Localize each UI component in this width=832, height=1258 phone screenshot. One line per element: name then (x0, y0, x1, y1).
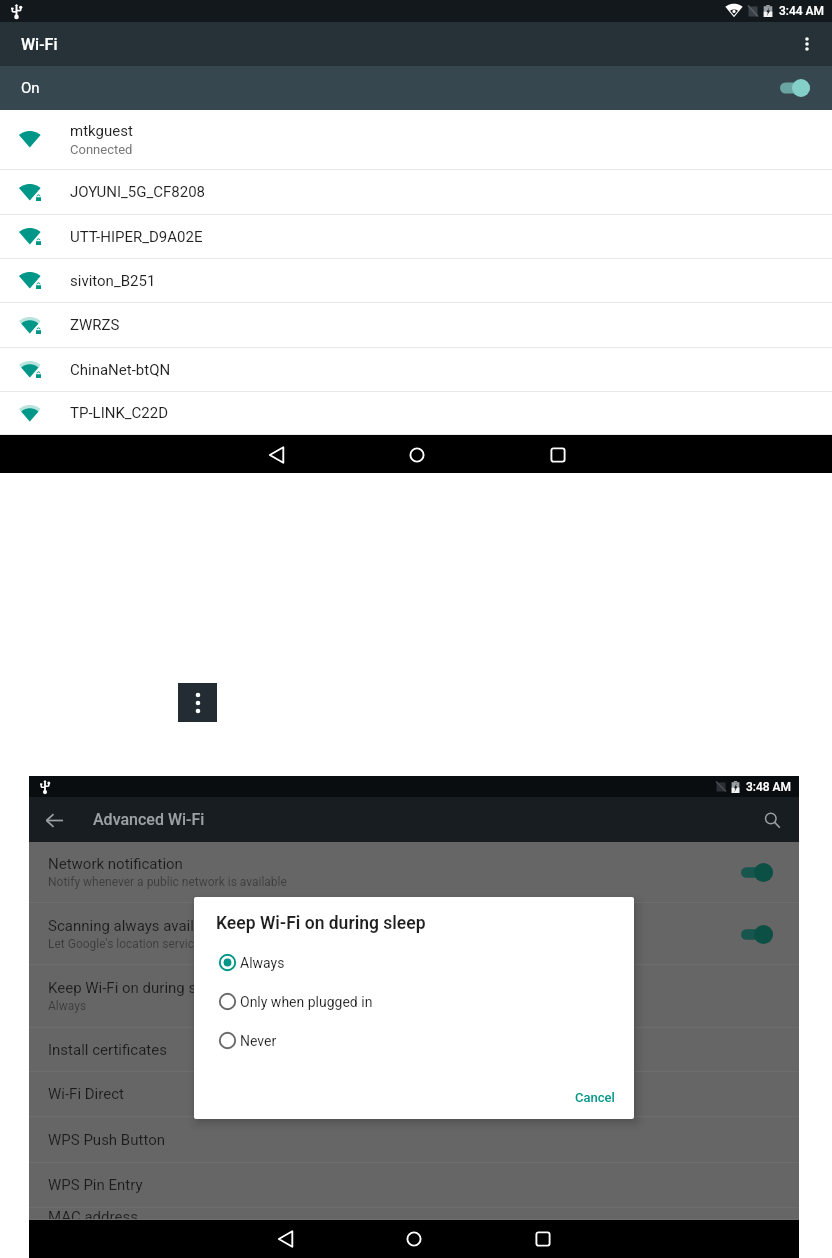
staticText: siviton_B251 (70, 272, 156, 290)
button[interactable]: MAC address (29, 1208, 799, 1220)
staticText: Let Google's location service and other … (48, 937, 312, 951)
button[interactable]: Only when plugged in (194, 982, 634, 1021)
button[interactable]: Back (255, 1220, 315, 1258)
button[interactable]: JOYUNI_5G_CF8208 (0, 170, 832, 215)
staticText: Connected (70, 142, 133, 157)
staticText: Always (48, 999, 87, 1013)
staticText: Notify whenever a public network is avai… (48, 875, 287, 889)
staticText: JOYUNI_5G_CF8208 (70, 183, 206, 201)
button[interactable]: More options (178, 683, 217, 722)
staticText: Wi-Fi Direct (48, 1085, 124, 1103)
button[interactable]: Keep Wi-Fi on during sleep (29, 965, 799, 1028)
button[interactable]: TP-LINK_C22D (0, 392, 832, 435)
staticText: Advanced Wi-Fi (93, 810, 205, 829)
staticText: WPS Pin Entry (48, 1176, 143, 1194)
button[interactable]: Wi-Fi Direct (29, 1072, 799, 1117)
staticText: TP-LINK_C22D (70, 404, 169, 422)
staticText: Only when plugged in (240, 994, 373, 1010)
button[interactable]: On (0, 66, 832, 110)
button[interactable]: ZWRZS (0, 303, 832, 348)
button[interactable]: Never (194, 1021, 634, 1060)
staticText: 3:44 AM (779, 4, 825, 18)
button[interactable]: Home (387, 436, 447, 474)
button[interactable]: More options (785, 22, 829, 66)
staticText: Scanning always available (48, 917, 223, 935)
staticText: 3:48 AM (746, 780, 792, 794)
button[interactable]: UTT-HIPER_D9A02E (0, 215, 832, 259)
button[interactable]: Search (750, 798, 794, 842)
staticText: MAC address (48, 1208, 138, 1219)
button[interactable]: WPS Push Button (29, 1117, 799, 1163)
button[interactable]: WPS Pin Entry (29, 1163, 799, 1208)
staticText: Wi-Fi (21, 35, 58, 54)
button[interactable]: ChinaNet-btQN (0, 348, 832, 392)
staticText: Never (240, 1033, 277, 1049)
staticText: Always (240, 955, 285, 971)
button[interactable]: Recents (528, 436, 588, 474)
staticText: mtkguest (70, 122, 133, 140)
staticText: Network notification (48, 855, 183, 873)
staticText: UTT-HIPER_D9A02E (70, 228, 203, 246)
staticText: Keep Wi-Fi on during sleep (48, 979, 225, 997)
staticText: Install certificates (48, 1041, 167, 1059)
button[interactable]: Cancel (563, 1082, 627, 1113)
button[interactable]: Install certificates (29, 1028, 799, 1072)
button[interactable]: Network notification (29, 842, 799, 903)
button[interactable]: Recents (513, 1220, 573, 1258)
button[interactable]: siviton_B251 (0, 259, 832, 303)
button[interactable]: Back (246, 436, 306, 474)
staticText: ChinaNet-btQN (70, 361, 171, 379)
button[interactable]: Back (32, 798, 76, 842)
button[interactable]: Scanning always available (29, 903, 799, 965)
staticText: On (21, 79, 40, 97)
staticText: WPS Push Button (48, 1131, 165, 1149)
button[interactable]: Always (194, 943, 634, 982)
staticText: ZWRZS (70, 316, 120, 334)
button[interactable]: Home (384, 1220, 444, 1258)
staticText: Keep Wi-Fi on during sleep (216, 913, 426, 934)
button[interactable]: mtkguest (0, 110, 832, 170)
staticText: Cancel (575, 1090, 615, 1105)
